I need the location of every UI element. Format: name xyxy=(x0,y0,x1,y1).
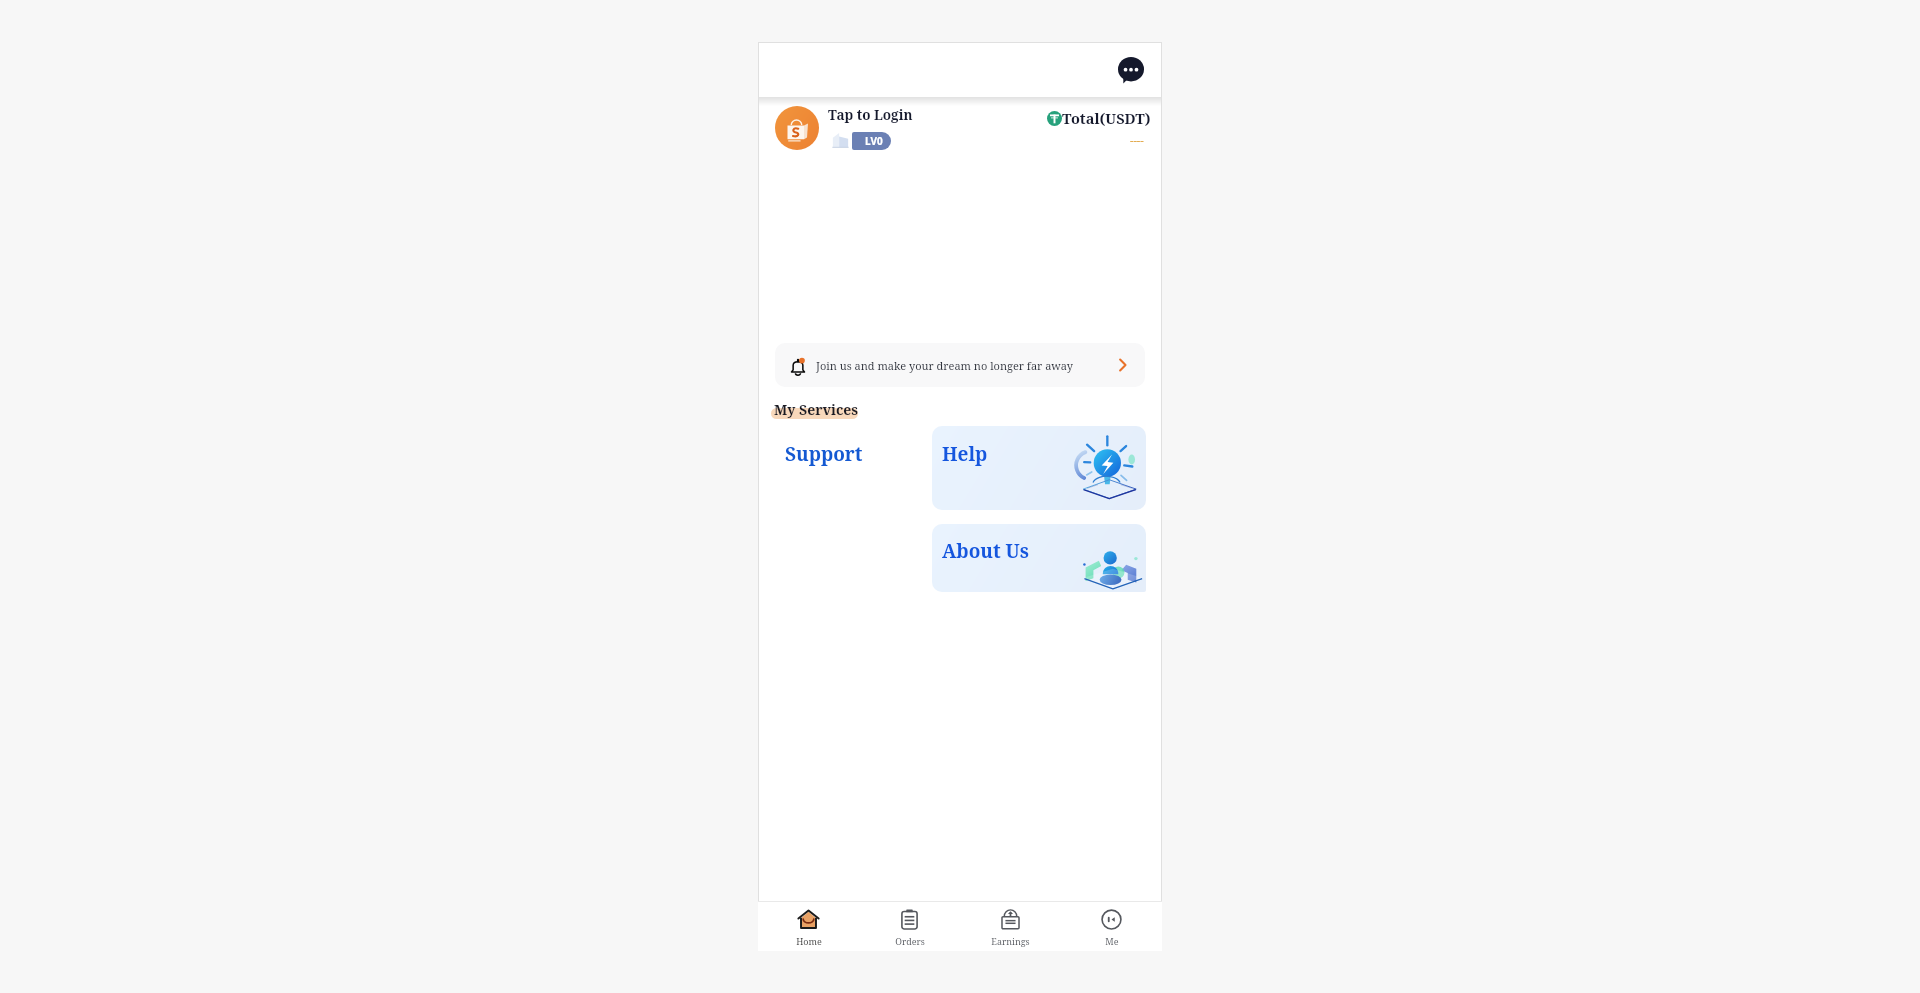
staticText: ---- xyxy=(1130,132,1144,147)
staticText: Orders xyxy=(895,935,925,947)
staticText: Join us and make your dream no longer fa… xyxy=(816,358,1074,373)
button[interactable]: Me xyxy=(1061,902,1162,951)
button[interactable]: Join us and make your dream no longer fa… xyxy=(775,343,1145,387)
button[interactable]: Help xyxy=(932,426,1146,510)
staticText: Total(USDT) xyxy=(1062,108,1151,128)
button[interactable]: Avatar, tap to login xyxy=(775,106,819,150)
staticText: About Us xyxy=(942,538,1029,564)
button[interactable]: Orders xyxy=(859,902,960,951)
button[interactable]: Earnings xyxy=(960,902,1061,951)
button[interactable]: Home xyxy=(758,902,859,951)
staticText: My Services xyxy=(774,400,859,419)
button[interactable]: Customer service chat xyxy=(1113,52,1149,88)
staticText: LV0 xyxy=(865,134,883,148)
button[interactable]: About Us xyxy=(932,524,1146,592)
staticText: Help xyxy=(942,441,988,467)
staticText: Home xyxy=(796,935,822,947)
button[interactable]: Support xyxy=(775,426,920,510)
staticText: Tap to Login xyxy=(828,106,913,124)
staticText: Support xyxy=(785,441,863,467)
staticText: Me xyxy=(1105,935,1119,947)
staticText: Earnings xyxy=(991,935,1030,947)
